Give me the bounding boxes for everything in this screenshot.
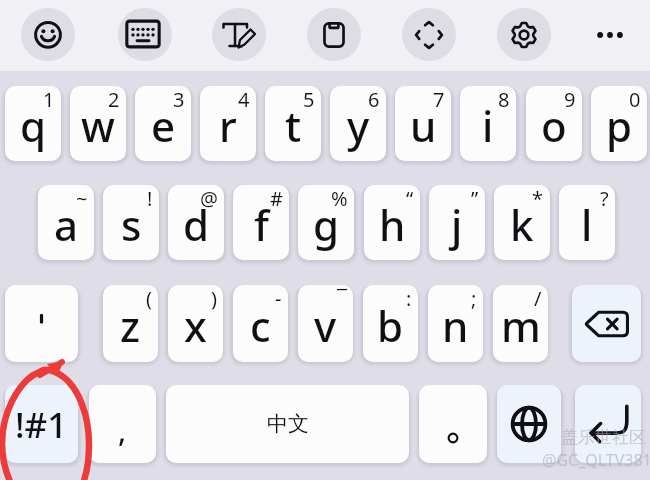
staticText: a bbox=[54, 196, 79, 253]
staticText: 盖乐世社区 bbox=[561, 427, 646, 448]
button[interactable]: Handwriting bbox=[212, 8, 266, 61]
staticText: d bbox=[183, 196, 210, 253]
staticText: ! bbox=[147, 185, 153, 212]
staticText: ¯ bbox=[337, 285, 347, 312]
staticText: w bbox=[81, 97, 115, 154]
button[interactable]: y bbox=[330, 86, 386, 161]
staticText: h bbox=[379, 196, 406, 253]
button[interactable]: z bbox=[103, 285, 158, 362]
staticText: y bbox=[347, 97, 370, 154]
button[interactable]: m bbox=[493, 285, 548, 362]
staticText: k bbox=[510, 196, 534, 253]
staticText: ( bbox=[146, 285, 152, 312]
staticText: @ bbox=[200, 185, 218, 212]
staticText: : bbox=[406, 285, 412, 312]
staticText: t bbox=[285, 97, 302, 154]
staticText: @GC_QLTV381 bbox=[542, 449, 650, 471]
staticText: - bbox=[275, 285, 282, 312]
staticText: ) bbox=[211, 285, 217, 312]
button[interactable]: i bbox=[460, 86, 516, 161]
staticText: q bbox=[20, 97, 47, 154]
staticText: f bbox=[254, 196, 269, 253]
staticText: # bbox=[270, 185, 283, 212]
staticText: m bbox=[501, 297, 541, 354]
staticText: / bbox=[534, 285, 542, 312]
button[interactable]: , bbox=[89, 385, 156, 463]
staticText: 5 bbox=[303, 86, 315, 113]
staticText: ~ bbox=[76, 185, 88, 212]
staticText: z bbox=[120, 297, 141, 354]
staticText: p bbox=[606, 97, 633, 154]
staticText: b bbox=[377, 297, 404, 354]
button[interactable]: Clipboard bbox=[307, 8, 361, 61]
button[interactable]: Settings bbox=[497, 8, 551, 61]
button[interactable]: Language bbox=[497, 385, 561, 463]
staticText: 9 bbox=[564, 86, 576, 113]
staticText: % bbox=[331, 185, 348, 212]
staticText: 0 bbox=[629, 86, 641, 113]
staticText: 中文 bbox=[267, 411, 309, 437]
button[interactable]: n bbox=[428, 285, 483, 362]
button[interactable]: a bbox=[38, 185, 94, 260]
staticText: 7 bbox=[433, 86, 445, 113]
button[interactable]: g bbox=[298, 185, 354, 260]
button[interactable]: u bbox=[395, 86, 451, 161]
staticText: v bbox=[314, 297, 337, 354]
button[interactable]: Emoji bbox=[21, 8, 75, 61]
staticText: 8 bbox=[498, 86, 510, 113]
button[interactable]: v bbox=[298, 285, 353, 362]
staticText: x bbox=[184, 297, 207, 354]
button[interactable]: d bbox=[168, 185, 224, 260]
staticText: 4 bbox=[238, 86, 250, 113]
staticText: j bbox=[451, 196, 463, 253]
staticText: ” bbox=[471, 185, 479, 212]
staticText: n bbox=[442, 297, 469, 354]
staticText: 6 bbox=[368, 86, 380, 113]
button[interactable]: t bbox=[265, 86, 321, 161]
button[interactable]: w bbox=[70, 86, 126, 161]
button[interactable]: Space bbox=[166, 385, 409, 463]
staticText: s bbox=[121, 196, 142, 253]
staticText: o bbox=[541, 97, 567, 154]
button[interactable]: e bbox=[135, 86, 191, 161]
button[interactable]: x bbox=[168, 285, 223, 362]
button[interactable]: f bbox=[233, 185, 289, 260]
button[interactable]: More bbox=[583, 8, 637, 62]
button[interactable]: q bbox=[5, 86, 61, 161]
staticText: 1 bbox=[43, 86, 55, 113]
button[interactable]: c bbox=[233, 285, 288, 362]
staticText: , bbox=[118, 410, 127, 451]
staticText: u bbox=[410, 97, 437, 154]
staticText: “ bbox=[406, 185, 414, 212]
staticText: ? bbox=[600, 185, 609, 212]
button[interactable]: Symbols bbox=[5, 385, 78, 463]
staticText: r bbox=[219, 97, 237, 154]
button[interactable]: r bbox=[200, 86, 256, 161]
staticText: 3 bbox=[173, 86, 185, 113]
staticText: !#1 bbox=[15, 401, 68, 449]
button[interactable]: Move bbox=[402, 8, 456, 61]
button[interactable]: j bbox=[429, 185, 485, 260]
staticText: g bbox=[313, 196, 340, 253]
staticText: l bbox=[581, 196, 593, 253]
staticText: c bbox=[250, 297, 271, 354]
staticText: e bbox=[151, 97, 176, 154]
button[interactable]: ' bbox=[5, 285, 78, 362]
button[interactable]: b bbox=[363, 285, 418, 362]
button[interactable]: p bbox=[591, 86, 647, 161]
button[interactable]: 。 bbox=[419, 385, 487, 463]
staticText: ; bbox=[471, 285, 477, 312]
button[interactable]: l bbox=[559, 185, 615, 260]
button[interactable]: s bbox=[103, 185, 159, 260]
button[interactable]: h bbox=[364, 185, 420, 260]
staticText: 2 bbox=[108, 86, 120, 113]
staticText: i bbox=[482, 97, 494, 154]
staticText: * bbox=[532, 185, 544, 212]
button[interactable]: k bbox=[494, 185, 550, 260]
button[interactable]: Backspace bbox=[572, 285, 641, 362]
button[interactable]: o bbox=[526, 86, 582, 161]
button[interactable]: Keyboard bbox=[118, 8, 172, 61]
button[interactable]: Enter bbox=[575, 385, 641, 463]
